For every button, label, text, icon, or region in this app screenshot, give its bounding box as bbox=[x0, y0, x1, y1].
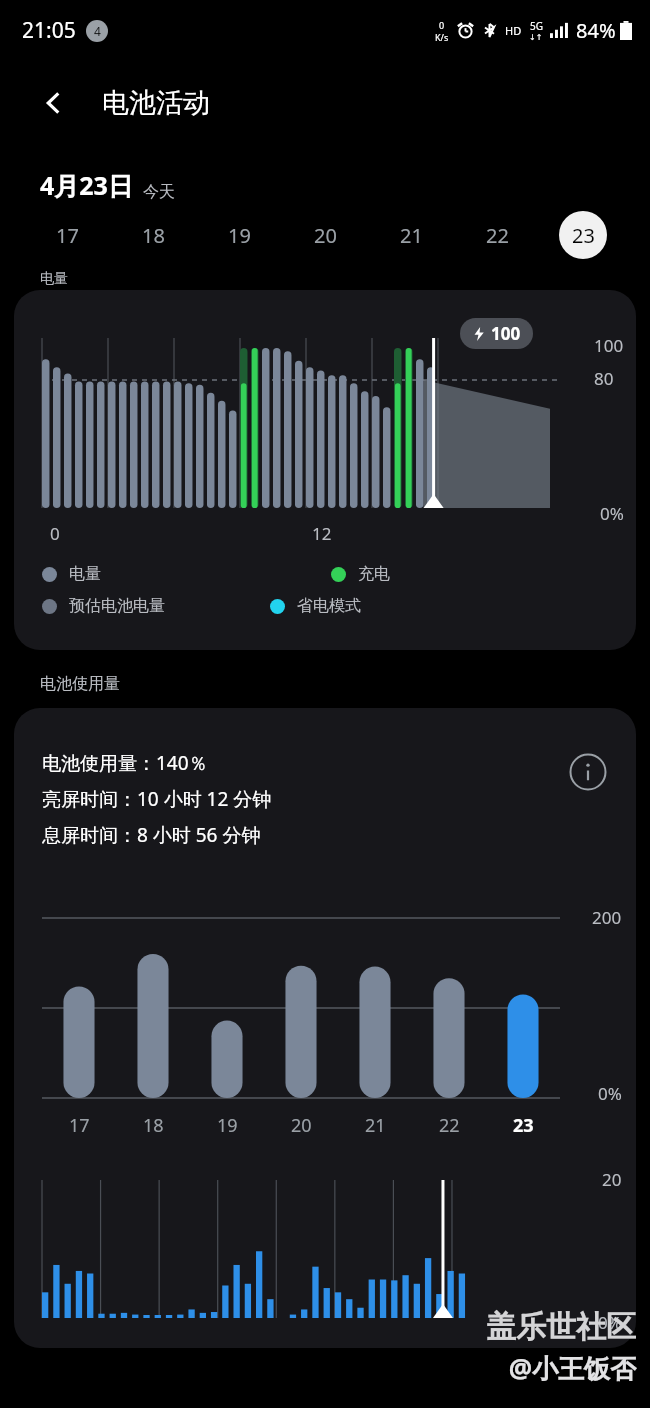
staticText: 17 bbox=[56, 222, 79, 249]
staticText: @小王饭否 bbox=[508, 1350, 636, 1386]
button[interactable]: 23 bbox=[540, 202, 626, 268]
staticText: 21:05 bbox=[22, 16, 76, 45]
staticText: 充电 bbox=[358, 564, 390, 584]
button[interactable]: Back bbox=[28, 77, 80, 129]
staticText: 80 bbox=[594, 367, 614, 390]
button[interactable]: 19 bbox=[196, 202, 282, 268]
staticText: 0% bbox=[598, 1082, 622, 1105]
staticText: 4 bbox=[94, 23, 101, 39]
button[interactable]: 20 bbox=[282, 202, 368, 268]
staticText: 息屏时间：8 小时 56 分钟 bbox=[42, 822, 261, 848]
staticText: HD bbox=[505, 23, 522, 38]
staticText: 12 bbox=[312, 522, 332, 545]
staticText: 盖乐世社区 bbox=[486, 1308, 636, 1346]
staticText: 19 bbox=[228, 222, 251, 249]
staticText: 22 bbox=[439, 1113, 460, 1138]
staticText: 84% bbox=[576, 17, 616, 44]
staticText: 电量 bbox=[69, 564, 101, 584]
staticText: 20 bbox=[602, 1168, 622, 1191]
staticText: 预估电池电量 bbox=[69, 596, 165, 616]
staticText: 0 bbox=[50, 522, 60, 545]
staticText: 省电模式 bbox=[297, 596, 361, 616]
staticText: 20 bbox=[291, 1113, 312, 1138]
staticText: 4月23日 bbox=[40, 168, 133, 202]
staticText: 19 bbox=[217, 1113, 238, 1138]
staticText: K/s bbox=[435, 31, 449, 43]
button[interactable]: Info bbox=[566, 750, 610, 794]
button[interactable]: 18 bbox=[110, 202, 196, 268]
staticText: 23 bbox=[513, 1113, 534, 1138]
button[interactable]: 100 bbox=[14, 290, 636, 650]
staticText: 0% bbox=[600, 502, 624, 525]
staticText: 亮屏时间：10 小时 12 分钟 bbox=[42, 786, 272, 812]
staticText: 200 bbox=[592, 906, 622, 929]
staticText: 电量 bbox=[40, 270, 68, 288]
button[interactable]: 21 bbox=[368, 202, 454, 268]
staticText: 21 bbox=[400, 222, 423, 249]
staticText: 17 bbox=[69, 1113, 90, 1138]
staticText: 100 bbox=[491, 322, 521, 345]
staticText: 电池活动 bbox=[102, 86, 210, 120]
staticText: 0% bbox=[598, 1311, 622, 1334]
staticText: 今天 bbox=[143, 182, 175, 202]
staticText: 电池使用量 bbox=[40, 674, 120, 694]
staticText: 18 bbox=[143, 1113, 164, 1138]
staticText: 23 bbox=[572, 222, 595, 249]
button[interactable]: 17 bbox=[24, 202, 110, 268]
staticText: 18 bbox=[142, 222, 165, 249]
staticText: 电池使用量：140％ bbox=[42, 750, 208, 776]
staticText: 22 bbox=[486, 222, 509, 249]
staticText: 21 bbox=[365, 1113, 386, 1138]
staticText: 20 bbox=[314, 222, 337, 249]
button[interactable]: 22 bbox=[454, 202, 540, 268]
staticText: 0 bbox=[439, 19, 445, 31]
staticText: 5G bbox=[530, 19, 543, 33]
staticText: 100 bbox=[594, 334, 624, 357]
staticText: ↓↑ bbox=[529, 33, 543, 42]
